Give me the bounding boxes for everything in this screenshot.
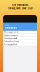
staticText: Drink more water (4, 34, 18, 36)
staticText: throughout your day (8, 7, 32, 10)
staticText: Today (4, 24, 9, 26)
button[interactable]: Stand up and walk (3, 37, 37, 40)
staticText: Evening wind down (4, 43, 17, 46)
staticText: Take a short break (4, 40, 19, 42)
button[interactable]: Drink more water (3, 34, 37, 37)
staticText: Stand up and walk (4, 37, 17, 39)
staticText: Reminders (4, 26, 16, 29)
staticText: Morning stretch (4, 31, 18, 33)
button[interactable]: Morning stretch (3, 31, 37, 34)
button[interactable]: Evening wind down (3, 43, 37, 46)
button[interactable]: Take a short break (3, 40, 37, 43)
staticText: Set reminders (12, 4, 28, 6)
